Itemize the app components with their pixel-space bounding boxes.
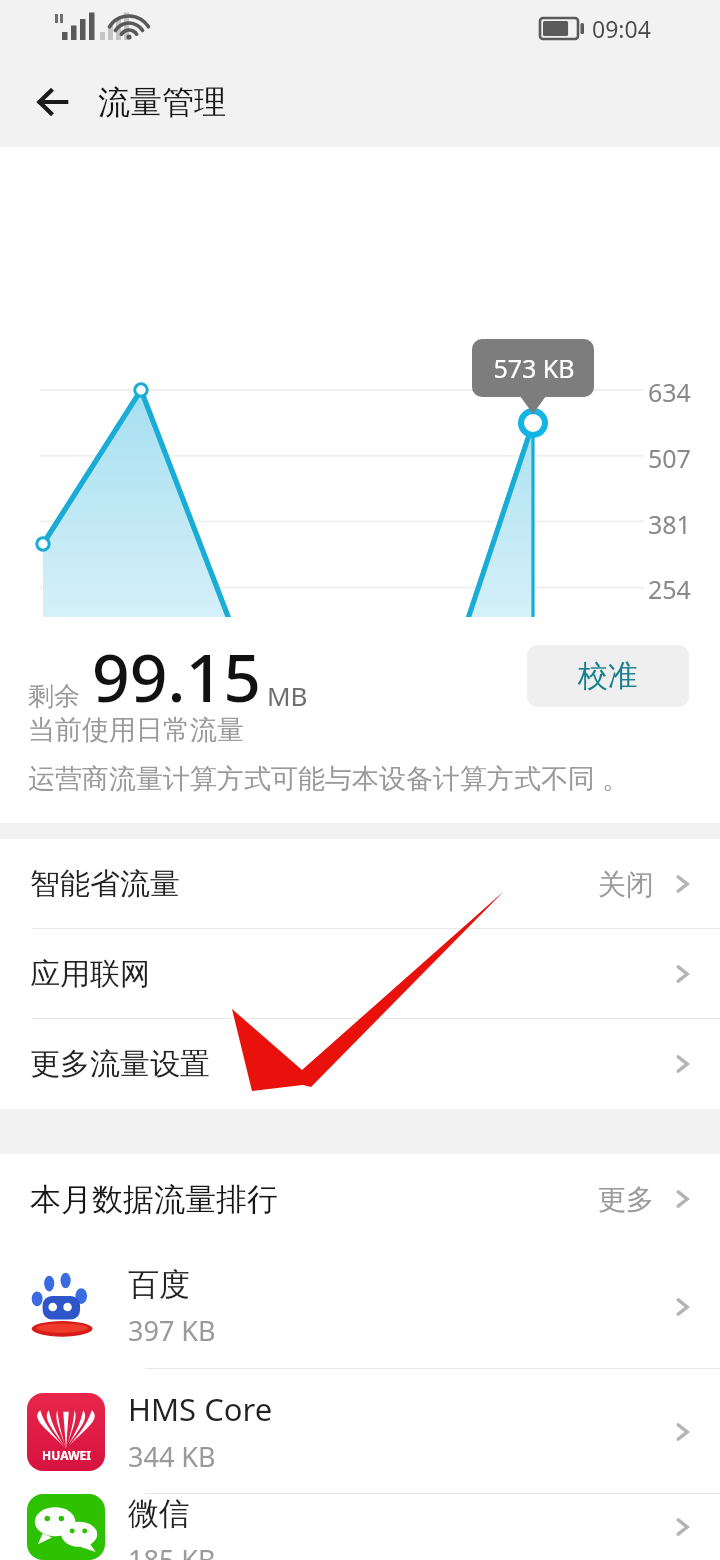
staticText: 09:04 xyxy=(592,13,651,44)
staticText: 127 xyxy=(648,638,691,672)
staticText: HUAWEI xyxy=(42,1447,91,1463)
staticText: 2 xyxy=(101,724,181,759)
staticText: 更多 xyxy=(598,1182,654,1217)
staticText: 剩余 xyxy=(28,680,80,713)
staticText: 254 xyxy=(648,572,691,606)
button[interactable]: 更多流量设置 xyxy=(0,1019,720,1109)
staticText: 507 xyxy=(648,441,691,475)
staticText: 1 xyxy=(3,724,83,759)
button[interactable]: 微信 xyxy=(0,1494,720,1560)
staticText: 关闭 xyxy=(598,867,654,902)
staticText: MB xyxy=(267,678,308,713)
staticText: 573 KB xyxy=(483,351,585,385)
staticText: 本月数据流量排行 xyxy=(30,1180,278,1219)
staticText: 智能省流量 xyxy=(30,865,180,903)
button[interactable]: 校准 xyxy=(527,645,689,707)
staticText: 应用联网 xyxy=(30,955,150,993)
staticText: 344 KB xyxy=(128,1438,216,1475)
button[interactable]: 百度 xyxy=(0,1244,720,1369)
staticText: 当前使用日常流量 xyxy=(28,713,244,747)
staticText: 397 KB xyxy=(128,1312,216,1349)
staticText: 3 xyxy=(199,724,279,759)
button[interactable]: 应用联网 xyxy=(0,929,720,1019)
staticText: 校准 xyxy=(578,657,638,695)
staticText: HMS Core xyxy=(128,1388,273,1430)
staticText: 634 xyxy=(648,375,691,409)
button[interactable]: Back xyxy=(22,69,88,135)
staticText: 99.15 xyxy=(92,631,261,721)
staticText: 185 KB xyxy=(128,1541,216,1560)
staticText: 微信 xyxy=(128,1494,190,1533)
staticText: 0.0 xyxy=(648,704,684,738)
staticText: 流量管理 xyxy=(98,82,226,122)
button[interactable]: 本月数据流量排行 xyxy=(30,1154,698,1244)
button[interactable]: 智能省流量 xyxy=(0,839,720,929)
staticText: 百度 xyxy=(128,1265,190,1304)
button[interactable]: HUAWEI xyxy=(0,1369,720,1494)
staticText: 运营商流量计算方式可能与本设备计算方式不同 。 xyxy=(28,759,630,796)
staticText: 更多流量设置 xyxy=(30,1045,210,1083)
staticText: 381 xyxy=(648,507,691,541)
